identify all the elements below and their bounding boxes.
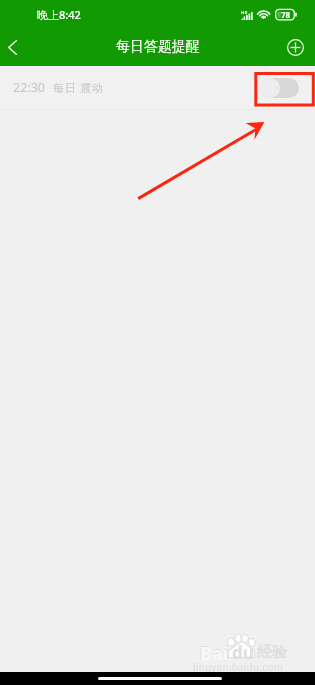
button[interactable]: Toggle daily reminder xyxy=(260,78,299,98)
staticText: 晚上8:42 xyxy=(37,7,81,22)
staticText: 78 xyxy=(281,9,291,20)
button[interactable]: Back xyxy=(0,28,25,66)
staticText: jingyan.baidu.com xyxy=(193,660,284,674)
staticText: 经验 xyxy=(257,643,287,662)
staticText: 每日 震动 xyxy=(53,80,104,95)
button[interactable]: Add xyxy=(279,28,311,66)
staticText: Bai xyxy=(199,640,229,666)
staticText: 每日答题提醒 xyxy=(116,38,200,56)
staticText: Bai xyxy=(200,641,229,666)
staticText: 22:30 xyxy=(13,79,45,96)
staticText: du xyxy=(232,641,254,664)
button[interactable]: 22:30 xyxy=(0,66,315,110)
